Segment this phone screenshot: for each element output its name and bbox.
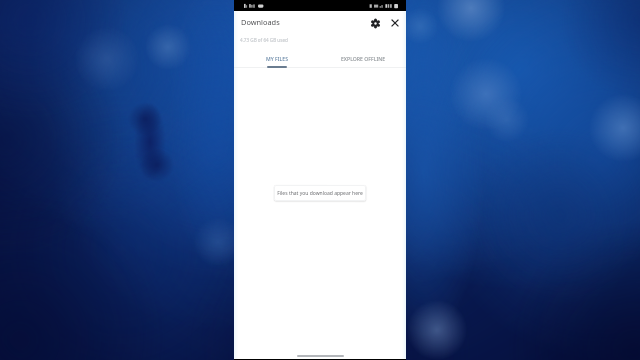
button[interactable]: EXPLORE OFFLINE [320, 52, 406, 68]
staticText: 4.73 GB of 64 GB used [240, 37, 288, 43]
staticText: MY FILES [266, 55, 289, 62]
button[interactable]: Close [388, 16, 402, 30]
button[interactable]: Files that you download appear here [274, 185, 366, 201]
button[interactable]: Settings [368, 16, 382, 30]
staticText: Files that you download appear here [277, 190, 363, 197]
staticText: EXPLORE OFFLINE [341, 55, 386, 62]
button[interactable]: Home [297, 355, 344, 357]
staticText: Downloads [241, 17, 280, 27]
button[interactable]: MY FILES [234, 52, 320, 68]
